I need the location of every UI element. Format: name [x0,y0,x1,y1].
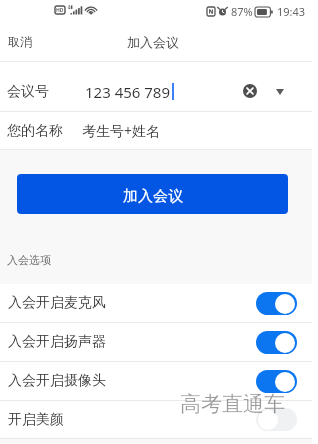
button[interactable]: Show history [268,80,292,104]
staticText: 会议号 [7,83,49,101]
staticText: 加入会议 [127,34,179,50]
button[interactable]: 加入会议 [17,174,288,214]
button[interactable]: Toggle, on [256,292,297,315]
staticText: 入会选项 [7,253,51,267]
button[interactable]: 入会开启麦克风 [0,284,312,322]
button[interactable]: Toggle, off [256,408,297,431]
button[interactable]: 入会开启扬声器 [0,323,312,361]
button[interactable]: Clear meeting number [237,78,263,104]
button[interactable]: 会议号 [0,62,312,111]
button[interactable]: 取消 [8,22,32,61]
staticText: 87% [231,4,253,19]
staticText: 高考直通车 [180,391,285,417]
staticText: 加入会议 [123,187,183,206]
button[interactable]: Toggle, on [256,370,297,393]
button[interactable]: 您的名称 [0,112,312,149]
staticText: 123 456 789 [85,82,171,102]
staticText: 19:43 [277,4,306,19]
staticText: HD [56,7,64,14]
staticText: 入会开启摄像头 [8,372,106,390]
staticText: 取消 [8,34,32,49]
button[interactable]: 入会开启摄像头 [0,362,312,400]
button[interactable]: 开启美颜 [0,401,312,438]
staticText: 入会开启扬声器 [8,333,106,351]
staticText: 开启美颜 [8,411,64,429]
staticText: 您的名称 [7,122,63,140]
staticText: 入会开启麦克风 [8,294,106,312]
staticText: 考生号+姓名 [82,121,161,140]
button[interactable]: Toggle, on [256,331,297,354]
